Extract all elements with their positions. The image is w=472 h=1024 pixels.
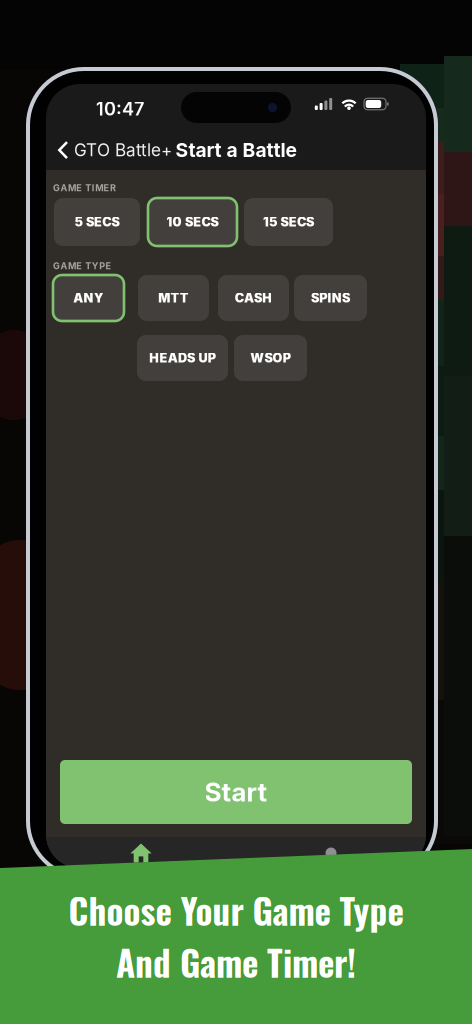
staticText: ANY (73, 290, 104, 306)
staticText: GAME TIMER (53, 182, 116, 193)
staticText: And Game Timer! (116, 936, 356, 988)
button[interactable]: MTT (138, 275, 209, 321)
staticText: Start a Battle (175, 138, 296, 162)
button[interactable]: SPINS (294, 275, 367, 321)
staticText: WSOP (250, 350, 291, 366)
button[interactable]: Profile (296, 839, 366, 867)
staticText: MTT (158, 290, 189, 306)
button[interactable]: Home (106, 839, 176, 867)
staticText: HEADS UP (149, 350, 216, 366)
staticText: 10 SECS (166, 214, 219, 230)
button[interactable]: 15 SECS (244, 198, 333, 246)
button[interactable]: WSOP (234, 335, 307, 381)
staticText: 5 SECS (74, 214, 119, 230)
staticText: GTO Battle+ (74, 140, 172, 160)
button[interactable]: HEADS UP (137, 335, 228, 381)
staticText: SPINS (311, 290, 350, 306)
staticText: Start (204, 776, 267, 808)
button[interactable]: 5 SECS (54, 198, 140, 246)
button[interactable]: GTO Battle+ (54, 136, 172, 164)
button[interactable]: ANY (53, 275, 124, 321)
staticText: Choose Your Game Type (68, 884, 403, 936)
staticText: GAME TYPE (53, 260, 112, 271)
staticText: 15 SECS (263, 214, 314, 230)
staticText: CASH (235, 290, 272, 306)
button[interactable]: Start (60, 760, 412, 824)
button[interactable]: CASH (218, 275, 289, 321)
staticText: 10:47 (96, 98, 144, 120)
button[interactable]: 10 SECS (148, 198, 237, 246)
